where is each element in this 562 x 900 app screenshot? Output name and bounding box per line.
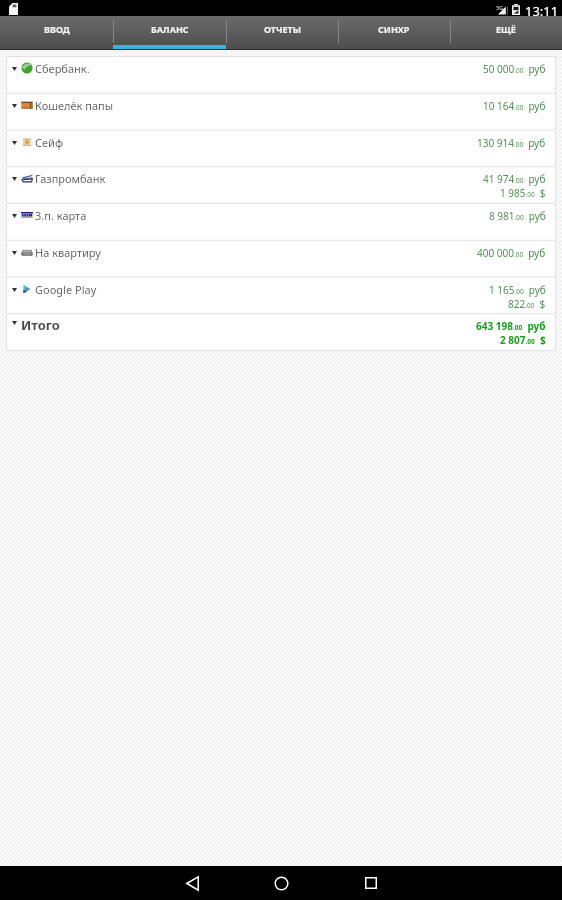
- button[interactable]: ЕЩЁ: [450, 16, 562, 50]
- button[interactable]: БАЛАНС: [113, 16, 226, 50]
- staticText: На квартиру: [35, 245, 101, 260]
- button[interactable]: ВВОД: [0, 16, 113, 50]
- button[interactable]: Recent apps: [326, 866, 415, 900]
- staticText: ЕЩЁ: [496, 23, 516, 35]
- button[interactable]: Кошелёк папы: [6, 94, 556, 130]
- staticText: 822.00 $: [508, 297, 546, 311]
- staticText: ВВОД: [44, 23, 70, 35]
- staticText: 10 164.00 руб: [483, 99, 546, 113]
- staticText: З.п. карта: [35, 208, 87, 223]
- button[interactable]: Сейф: [6, 131, 556, 167]
- button[interactable]: Back: [148, 866, 237, 900]
- staticText: 50 000.00 руб: [483, 62, 546, 76]
- staticText: 1 165.00 руб: [489, 283, 546, 297]
- button[interactable]: На квартиру: [6, 241, 556, 277]
- button[interactable]: Газпромбанк: [6, 167, 556, 203]
- button[interactable]: Сбербанк.: [6, 57, 556, 93]
- button[interactable]: Google Play: [6, 278, 556, 314]
- staticText: 8 981.00 руб: [489, 209, 546, 223]
- staticText: 643 198.00 руб: [476, 319, 546, 333]
- staticText: 3G: [496, 4, 504, 11]
- staticText: Газпромбанк: [35, 171, 106, 186]
- staticText: СИНХР: [378, 23, 410, 35]
- staticText: 41 974.00 руб: [483, 172, 546, 186]
- staticText: Кошелёк папы: [35, 98, 114, 113]
- staticText: Google Play: [35, 282, 97, 297]
- staticText: 2 807.00 $: [500, 333, 546, 347]
- button[interactable]: З.п. карта: [6, 204, 556, 240]
- button[interactable]: ОТЧЕТЫ: [226, 16, 338, 50]
- staticText: 130 914.00 руб: [477, 136, 546, 150]
- staticText: БАЛАНС: [151, 23, 189, 35]
- button[interactable]: СИНХР: [338, 16, 450, 50]
- staticText: 1 985.00 $: [500, 186, 546, 200]
- staticText: ОТЧЕТЫ: [264, 23, 301, 35]
- staticText: Итого: [21, 316, 60, 334]
- button[interactable]: Home: [237, 866, 326, 900]
- staticText: 400 000.00 руб: [477, 246, 546, 260]
- button[interactable]: Итого: [6, 314, 556, 350]
- staticText: Сбербанк.: [35, 61, 90, 76]
- staticText: 13:11: [525, 2, 559, 17]
- staticText: Сейф: [35, 135, 64, 150]
